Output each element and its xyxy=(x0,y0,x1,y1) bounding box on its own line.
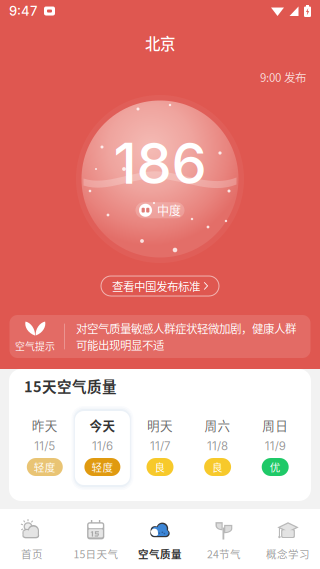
staticText: 15天空气质量 xyxy=(24,375,117,396)
staticText: 首页 xyxy=(21,546,43,561)
staticText: 概念学习 xyxy=(266,546,310,561)
button[interactable]: 空气提示 xyxy=(9,315,310,358)
staticText: 良 xyxy=(154,459,165,475)
staticText: 11/7 xyxy=(150,439,170,453)
staticText: 明天 xyxy=(147,416,173,434)
button[interactable]: 周日 xyxy=(246,406,304,490)
staticText: 轻度 xyxy=(34,459,56,475)
staticText: 周日 xyxy=(262,416,288,434)
staticText: 空气质量 xyxy=(138,546,182,561)
button[interactable]: 24节气 xyxy=(192,509,256,569)
staticText: 优 xyxy=(270,459,281,475)
button[interactable]: 首页 xyxy=(0,509,64,569)
staticText: 空气提示 xyxy=(15,339,55,353)
staticText: 轻度 xyxy=(91,459,113,475)
button[interactable]: 概念学习 xyxy=(256,509,320,569)
button[interactable]: 15日天气 xyxy=(64,509,128,569)
button[interactable]: 查看中国发布标准 xyxy=(101,276,219,296)
button[interactable]: 今天 xyxy=(74,406,131,490)
staticText: 15日天气 xyxy=(73,546,118,561)
staticText: 查看中国发布标准 xyxy=(112,278,200,294)
staticText: 中度 xyxy=(157,202,181,219)
staticText: 11/9 xyxy=(265,439,286,453)
staticText: 良 xyxy=(212,459,223,475)
button[interactable]: 明天 xyxy=(131,406,189,490)
staticText: 对空气质量敏感人群症状轻微加剧，健康人群可能出现明显不适 xyxy=(76,320,296,353)
staticText: 今天 xyxy=(89,416,115,434)
staticText: 186 xyxy=(113,129,206,197)
button[interactable]: 空气质量 xyxy=(128,509,192,569)
staticText: 11/5 xyxy=(34,439,55,453)
button[interactable]: 周六 xyxy=(189,406,246,490)
staticText: 昨天 xyxy=(32,416,58,434)
staticText: 9:47 xyxy=(9,3,37,19)
staticText: 周六 xyxy=(205,416,231,434)
staticText: 北京 xyxy=(145,32,175,54)
button[interactable]: 昨天 xyxy=(16,406,74,490)
staticText: 11/6 xyxy=(92,439,113,453)
staticText: 24节气 xyxy=(207,546,241,561)
staticText: 9:00 发布 xyxy=(260,69,306,85)
staticText: 11/8 xyxy=(207,439,228,453)
